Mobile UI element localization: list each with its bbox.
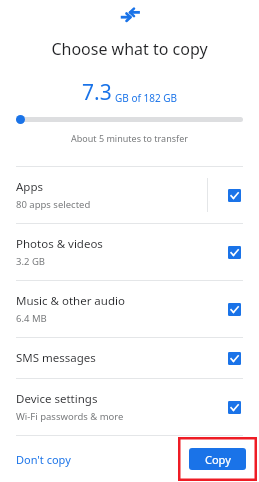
- button[interactable]: Copy: [189, 448, 246, 470]
- button[interactable]: Don't copy: [10, 446, 77, 473]
- button[interactable]: Toggle selection: [221, 296, 247, 322]
- staticText: Apps: [16, 179, 44, 195]
- staticText: SMS messages: [16, 350, 96, 366]
- button[interactable]: Toggle selection: [221, 394, 247, 420]
- staticText: Copy: [205, 452, 231, 467]
- staticText: Device settings: [16, 391, 98, 407]
- button[interactable]: Toggle selection: [221, 239, 247, 265]
- staticText: GB of 182 GB: [115, 91, 178, 105]
- staticText: About 5 minutes to transfer: [0, 132, 259, 144]
- button[interactable]: Apps: [0, 167, 259, 223]
- staticText: 80 apps selected: [16, 198, 91, 211]
- button[interactable]: Toggle selection: [221, 182, 247, 208]
- staticText: Choose what to copy: [0, 38, 259, 60]
- button[interactable]: Device settings: [0, 379, 259, 435]
- button[interactable]: Music & other audio: [0, 281, 259, 337]
- staticText: Music & other audio: [16, 293, 125, 309]
- staticText: 6.4 MB: [16, 312, 47, 325]
- other: Transfer: [119, 4, 141, 26]
- button[interactable]: SMS messages: [0, 338, 259, 378]
- staticText: 7.3: [82, 78, 112, 107]
- staticText: Wi-Fi passwords & more: [16, 410, 124, 423]
- staticText: Don't copy: [16, 452, 71, 467]
- staticText: Photos & videos: [16, 236, 103, 252]
- button[interactable]: Photos & videos: [0, 224, 259, 280]
- staticText: 3.2 GB: [16, 255, 45, 268]
- button[interactable]: Toggle selection: [221, 345, 247, 371]
